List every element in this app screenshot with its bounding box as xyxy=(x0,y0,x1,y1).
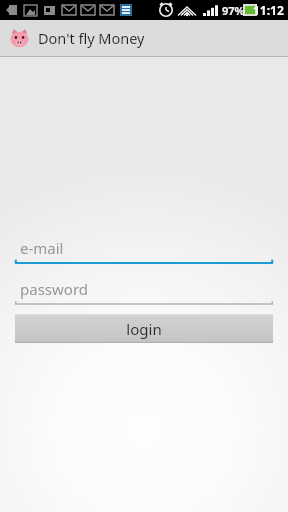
staticText: login xyxy=(126,319,162,339)
staticText: password xyxy=(20,279,88,299)
button[interactable]: password xyxy=(15,276,273,307)
staticText: Don't fly Money xyxy=(38,28,145,48)
button[interactable]: e-mail xyxy=(15,235,273,267)
staticText: 11:12 xyxy=(253,2,284,18)
button[interactable]: login xyxy=(15,314,273,343)
staticText: e-mail xyxy=(20,238,64,258)
staticText: 97% xyxy=(222,3,245,18)
